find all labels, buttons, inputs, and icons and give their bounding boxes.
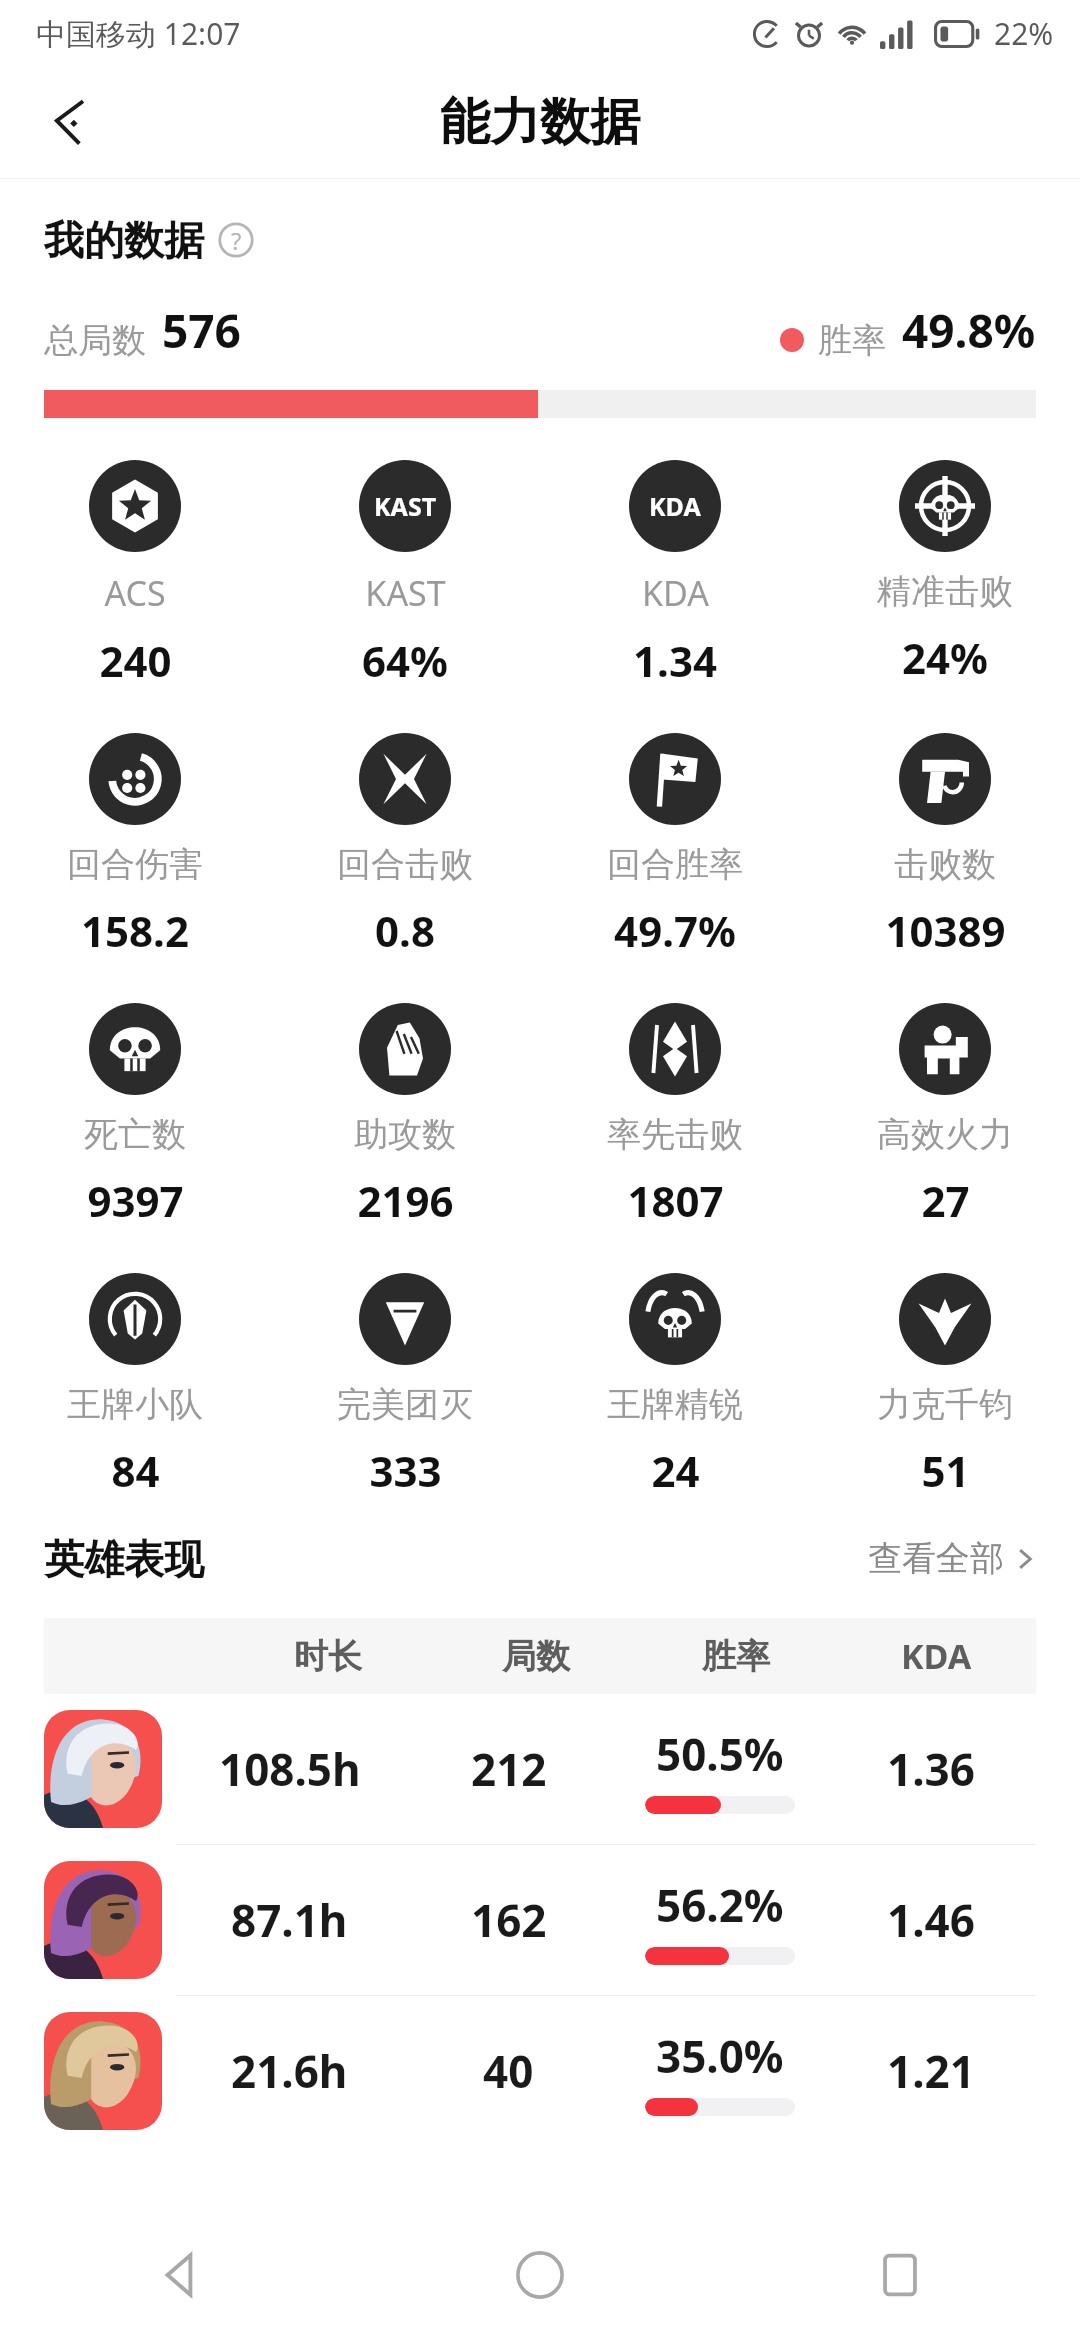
staticText: 高效火力 [877,1113,1013,1156]
staticText: 1.21 [887,2041,975,2101]
staticText: 35.0% [656,2026,784,2086]
staticText: KDA [901,1633,972,1679]
staticText: 1807 [627,1172,724,1229]
button[interactable]: 21.6h [0,1996,1080,2146]
staticText: 158.2 [81,902,189,959]
staticText: KAST [365,570,446,616]
button[interactable]: Home [360,2210,720,2340]
button[interactable]: 查看全部 [868,1529,1036,1588]
staticText: 56.2% [656,1875,784,1935]
staticText: KAST [374,489,437,523]
staticText: 87.1h [231,1890,348,1950]
staticText: 1.46 [887,1890,975,1950]
button[interactable]: 高效火力 [810,1003,1080,1229]
staticText: 576 [162,299,241,362]
staticText: 率先击败 [607,1113,743,1156]
staticText: 9397 [87,1172,184,1229]
staticText: 21.6h [231,2041,348,2101]
button[interactable]: 完美团灭 [270,1273,540,1499]
staticText: 333 [369,1442,442,1499]
staticText: 24 [651,1442,700,1499]
staticText: 死亡数 [84,1113,186,1156]
button[interactable]: 力克千钧 [810,1273,1080,1499]
staticText: 王牌小队 [67,1383,203,1426]
staticText: 1.34 [633,632,717,689]
staticText: 精准击败 [877,570,1013,613]
staticText: 助攻数 [354,1113,456,1156]
staticText: 能力数据 [440,91,640,154]
staticText: 局数 [502,1635,570,1678]
staticText: 162 [471,1890,547,1950]
button[interactable]: 精准击败 [810,460,1080,686]
staticText: 回合伤害 [67,843,203,886]
staticText: ? [231,224,242,257]
button[interactable]: 王牌精锐 [540,1273,810,1499]
button[interactable]: 108.5h [0,1694,1080,1844]
button[interactable]: Recents [720,2210,1080,2340]
staticText: KDA [649,489,701,523]
staticText: 212 [471,1739,547,1799]
staticText: 时长 [294,1635,362,1678]
button[interactable]: Back [28,78,116,166]
staticText: KDA [642,570,709,616]
staticText: 64% [362,632,448,689]
button[interactable]: KAST [270,460,540,689]
staticText: 22% [994,13,1054,54]
staticText: 回合击败 [337,843,473,886]
staticText: 24% [902,629,988,686]
staticText: 1.36 [887,1739,975,1799]
staticText: 英雄表现 [44,1534,204,1584]
staticText: 10389 [885,902,1006,959]
staticText: 查看全部 [868,1537,1004,1580]
staticText: 50.5% [656,1724,784,1784]
staticText: 49.8% [902,299,1036,362]
staticText: 108.5h [219,1739,361,1799]
staticText: 胜率 [818,319,886,362]
staticText: 0.8 [375,902,435,959]
staticText: 84 [111,1442,160,1499]
button[interactable]: 87.1h [0,1845,1080,1995]
staticText: 40 [483,2041,534,2101]
staticText: 回合胜率 [607,843,743,886]
staticText: 我的数据 [44,215,204,265]
staticText: 总局数 [44,319,146,362]
button[interactable]: Back [0,2210,360,2340]
button[interactable]: 回合胜率 [540,733,810,959]
button[interactable]: 我的数据 [44,215,254,265]
staticText: 51 [921,1442,970,1499]
staticText: 240 [99,632,172,689]
staticText: 胜率 [702,1635,770,1678]
staticText: 击败数 [894,843,996,886]
button[interactable]: 王牌小队 [0,1273,270,1499]
button[interactable]: 回合击败 [270,733,540,959]
staticText: 王牌精锐 [607,1383,743,1426]
staticText: ACS [104,570,166,616]
staticText: 27 [921,1172,970,1229]
staticText: 2196 [357,1172,454,1229]
button[interactable]: 击败数 [810,733,1080,959]
button[interactable]: KDA [540,460,810,689]
staticText: 49.7% [614,902,736,959]
button[interactable]: 助攻数 [270,1003,540,1229]
staticText: 力克千钧 [877,1383,1013,1426]
staticText: 完美团灭 [337,1383,473,1426]
staticText: 中国移动 12:07 [36,13,241,54]
button[interactable]: 回合伤害 [0,733,270,959]
button[interactable]: 死亡数 [0,1003,270,1229]
button[interactable]: 率先击败 [540,1003,810,1229]
button[interactable]: ACS [0,460,270,689]
